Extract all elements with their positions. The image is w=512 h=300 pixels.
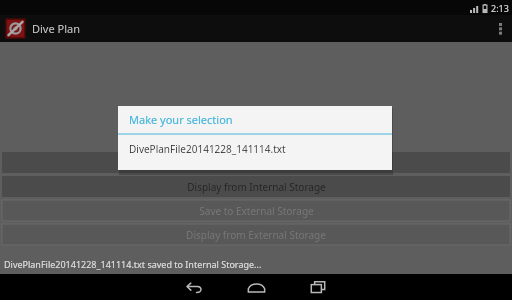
button[interactable]: Back [163,274,225,300]
button[interactable]: Recent apps [287,274,349,300]
button[interactable]: Home [225,274,287,300]
staticText: Dive Plan [32,21,80,36]
button[interactable]: DivePlanFile20141228_141114.txt [118,135,392,162]
staticText: Save to External Storage [199,204,314,218]
staticText: Display from Internal Storage [187,180,326,194]
staticText: Display from External Storage [186,228,326,242]
staticText: Make your selection [129,112,233,127]
button[interactable]: Save to Internal Storage [2,152,510,173]
button[interactable]: More options [488,15,512,42]
button[interactable]: Save to External Storage [2,200,510,221]
button[interactable]: Display from External Storage [2,224,510,245]
staticText: 2:13 [491,2,509,14]
staticText: DivePlanFile20141228_141114.txt [129,142,286,156]
button[interactable]: Display from Internal Storage [2,176,510,197]
staticText: DivePlanFile20141228_141114.txt saved to… [4,258,262,270]
